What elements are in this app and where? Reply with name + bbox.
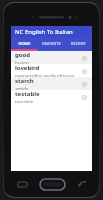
button[interactable]: HOME: [11, 38, 38, 49]
button[interactable]: FAVORITE: [38, 38, 65, 49]
staticText: testabile: [15, 99, 34, 103]
staticText: RECENT: [71, 41, 86, 46]
staticText: testable: [15, 90, 40, 98]
button[interactable]: testable: [11, 90, 92, 103]
button[interactable]: good: [11, 51, 92, 64]
staticText: FAVORITE: [42, 41, 61, 46]
button[interactable]: RECENT: [65, 38, 92, 49]
staticText: good: [15, 51, 31, 59]
staticText: starch: [15, 77, 34, 85]
button[interactable]: Add to favorites: [79, 66, 89, 76]
staticText: lovebird: [15, 64, 40, 72]
button[interactable]: Add to favorites: [79, 79, 89, 89]
button[interactable]: lovebird: [11, 64, 92, 77]
button[interactable]: Home: [35, 174, 69, 194]
button[interactable]: Back: [69, 174, 95, 194]
button[interactable]: Add to favorites: [79, 53, 89, 63]
staticText: NC English To Italian Dictionary: [15, 28, 92, 36]
button[interactable]: Add to favorites: [79, 92, 89, 102]
staticText: pappagallino verde africano: [15, 73, 75, 77]
button[interactable]: Recent apps: [9, 174, 35, 194]
staticText: buono: [15, 60, 29, 64]
button[interactable]: starch: [11, 77, 92, 90]
staticText: HOME: [18, 41, 31, 46]
staticText: amido: [15, 86, 29, 90]
